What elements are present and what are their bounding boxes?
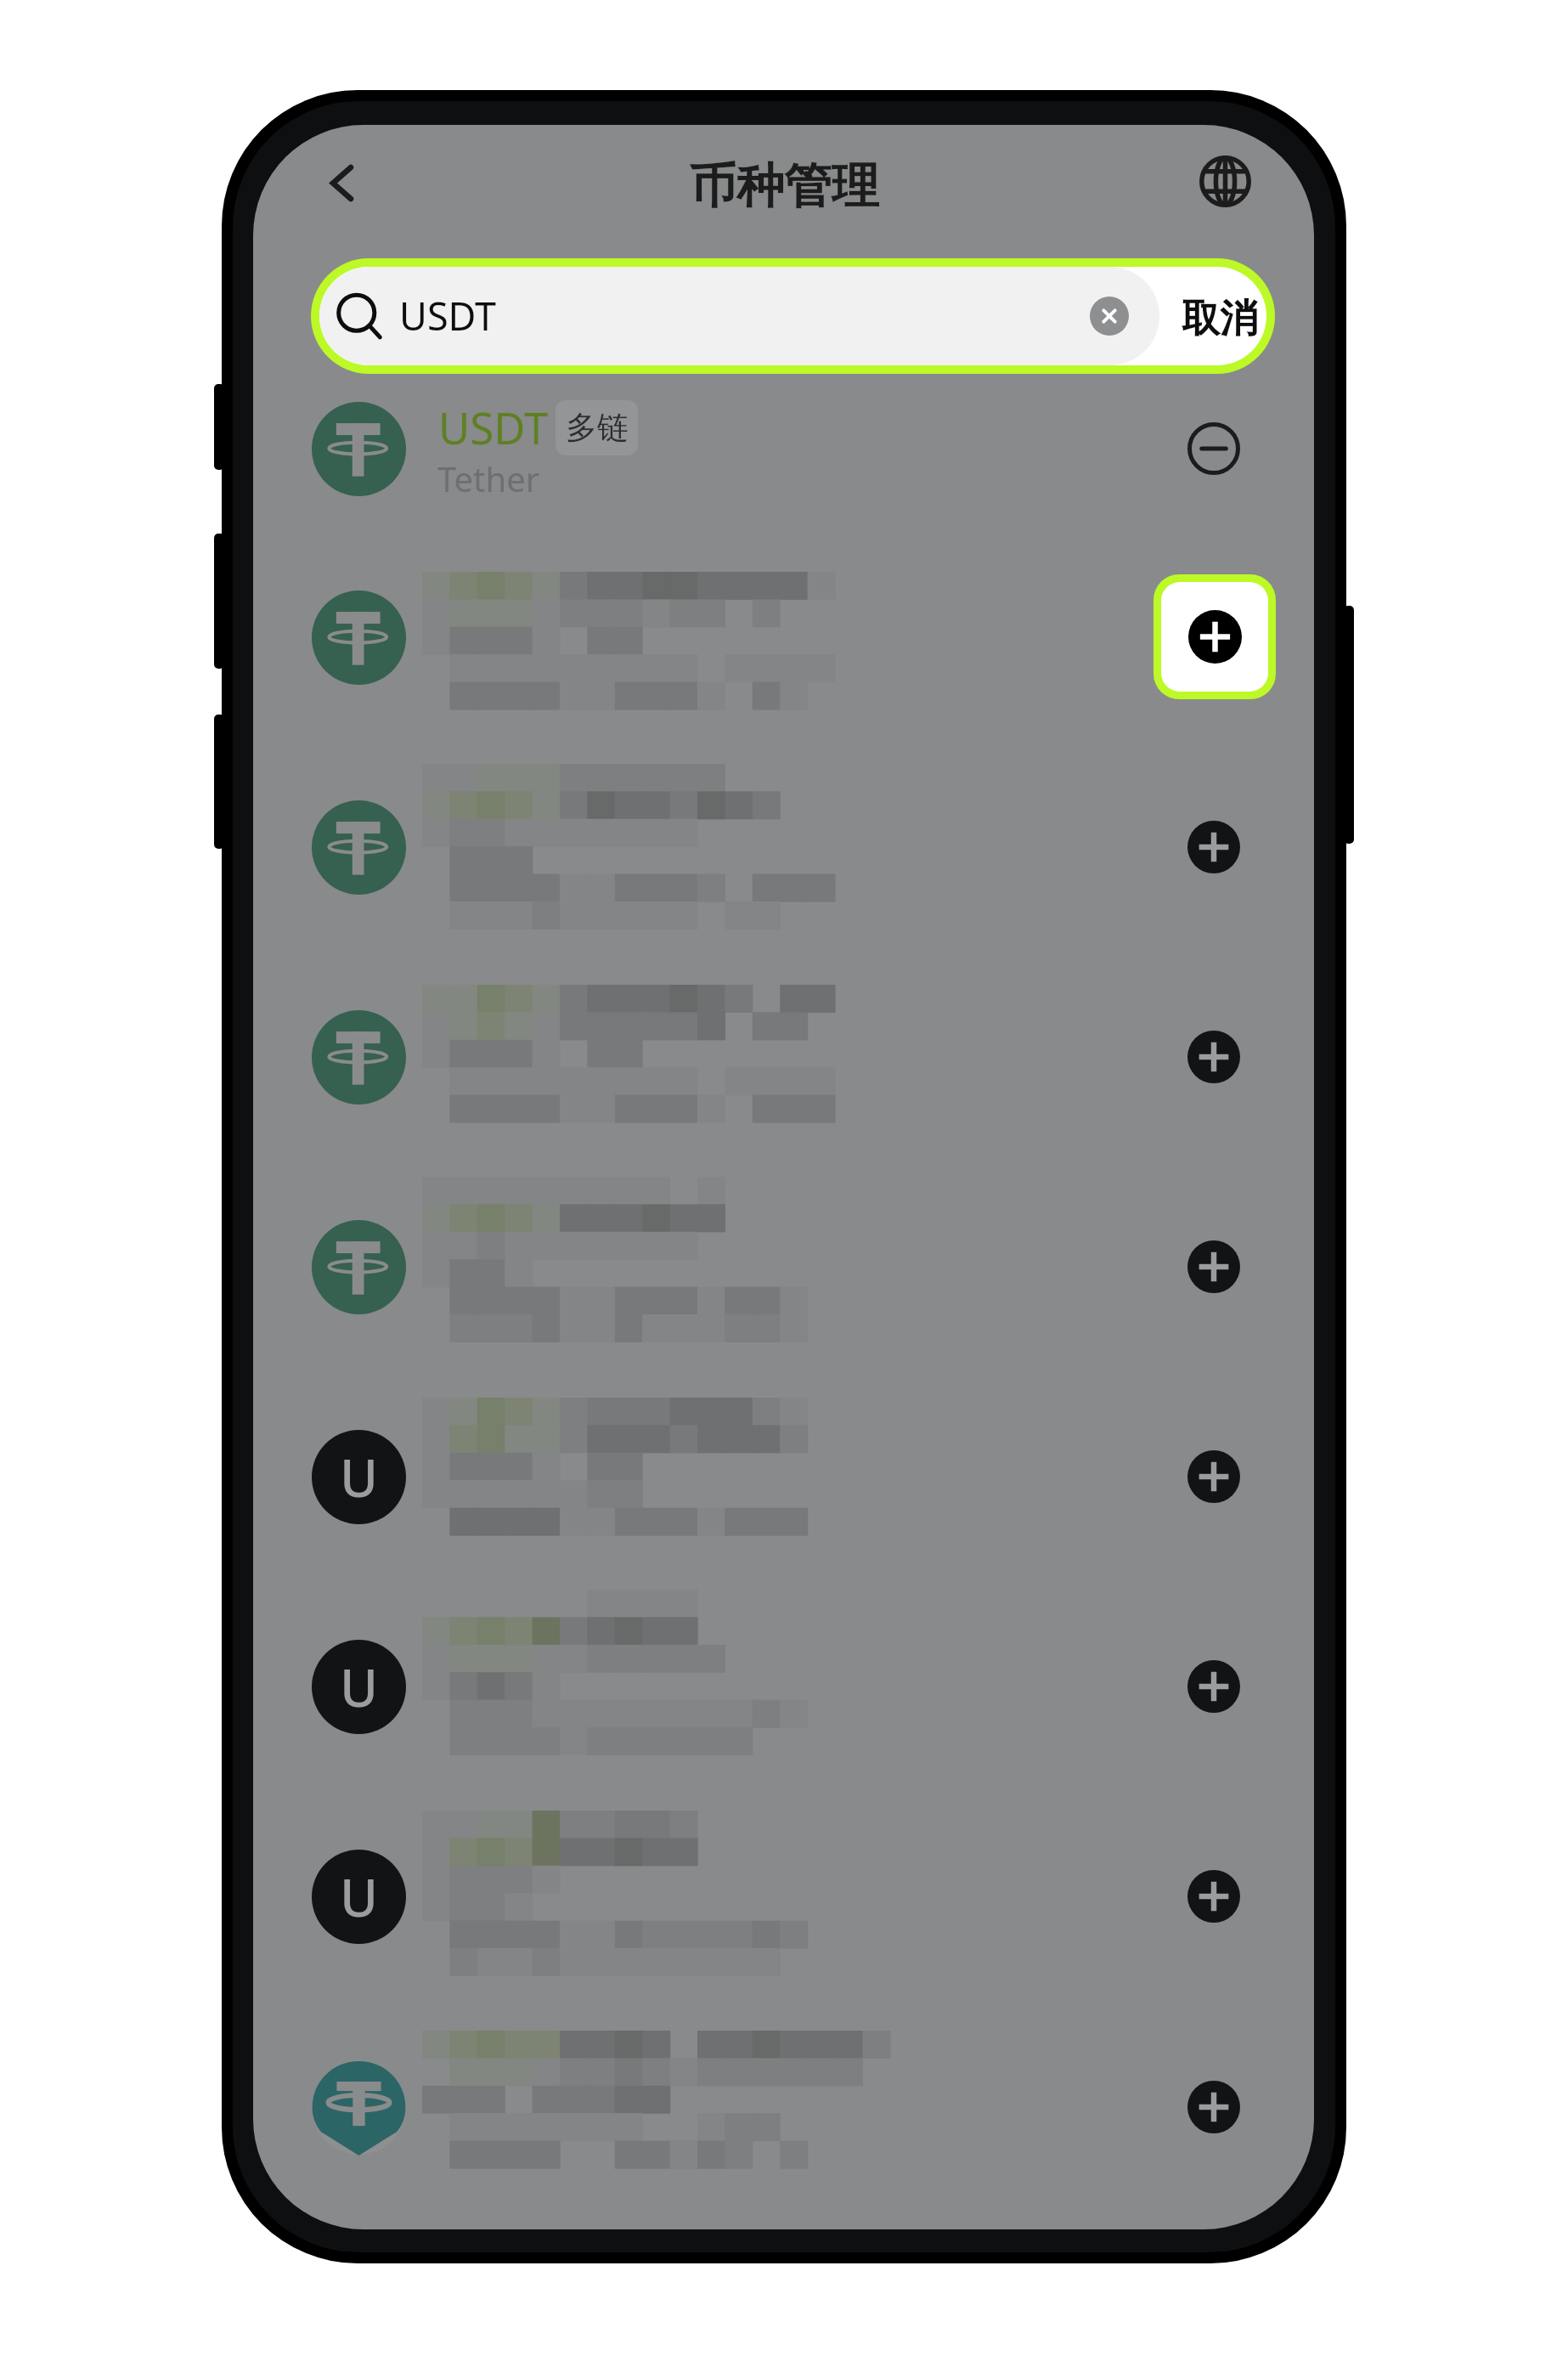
button[interactable] <box>253 2002 1314 2212</box>
staticText: U <box>340 1652 379 1722</box>
button[interactable]: Language <box>1199 155 1251 207</box>
button[interactable]: Add token <box>1187 1031 1240 1083</box>
button[interactable]: Add this token <box>1153 574 1276 699</box>
button[interactable]: Add token <box>1187 1240 1240 1293</box>
staticText: U <box>340 1442 379 1512</box>
staticText: Tether <box>437 455 540 501</box>
button[interactable]: Add token <box>1187 1660 1240 1713</box>
staticText: 取消 <box>1182 295 1258 343</box>
button[interactable] <box>263 387 1304 512</box>
button[interactable]: 取消 <box>1166 269 1273 368</box>
staticText: USDT <box>438 398 549 456</box>
button[interactable]: Add token <box>1187 1450 1240 1503</box>
button[interactable]: Back <box>302 151 365 215</box>
staticText: USDT <box>399 290 497 342</box>
button[interactable]: Clear search text <box>1090 297 1129 336</box>
button[interactable]: Remove USDT <box>1187 422 1240 475</box>
staticText: 多链 <box>566 408 629 448</box>
button[interactable] <box>253 952 1314 1162</box>
button[interactable]: Add token <box>1187 821 1240 873</box>
button[interactable]: Add token <box>1187 2081 1240 2133</box>
staticText: 币种管理 <box>689 156 879 217</box>
button[interactable] <box>253 742 1314 952</box>
button[interactable]: U <box>253 1371 1314 1582</box>
button[interactable] <box>253 1161 1314 1372</box>
button[interactable]: U <box>253 1791 1314 2002</box>
button[interactable]: U <box>253 1581 1314 1792</box>
button[interactable] <box>253 532 1314 743</box>
button[interactable]: Add token <box>1187 1870 1240 1923</box>
staticText: U <box>340 1862 379 1932</box>
button[interactable]: USDT <box>319 267 1159 365</box>
